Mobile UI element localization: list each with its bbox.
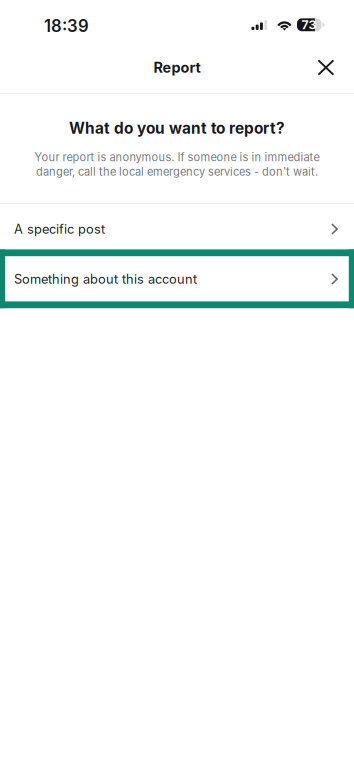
staticText: danger, call the local emergency service… bbox=[36, 165, 318, 178]
button[interactable]: Something about this account bbox=[0, 254, 354, 304]
staticText: Report bbox=[153, 59, 200, 76]
button[interactable]: A specific post bbox=[0, 204, 354, 254]
staticText: What do you want to report? bbox=[69, 119, 285, 138]
staticText: Your report is anonymous. If someone is … bbox=[34, 151, 319, 164]
button[interactable]: Close bbox=[305, 46, 347, 88]
staticText: 18:39 bbox=[44, 16, 89, 36]
staticText: 73 bbox=[301, 17, 316, 32]
staticText: A specific post bbox=[14, 221, 105, 237]
staticText: Something about this account bbox=[14, 271, 197, 287]
